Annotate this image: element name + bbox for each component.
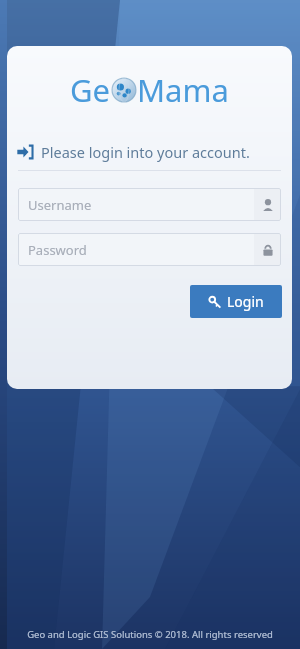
button[interactable]: Password [18,233,281,266]
staticText: Password [28,241,254,259]
staticText: Geo and Logic GIS Solutions © 2018. All … [0,628,300,641]
staticText: Username [28,196,254,214]
button[interactable]: Username [18,188,281,221]
button[interactable]: Login [190,285,282,318]
other: Password [254,233,281,266]
staticText: Mama [137,69,229,111]
staticText: Please login into your account. [41,142,250,162]
other: Username [254,188,281,221]
staticText: Login [227,292,264,311]
staticText: Ge [70,69,111,111]
